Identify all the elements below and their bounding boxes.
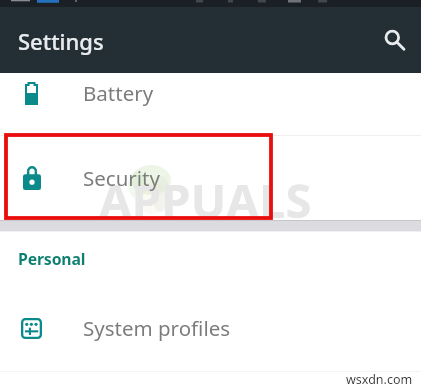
staticText: wsxdn.com (346, 371, 413, 388)
staticText: APPUALS (99, 168, 312, 232)
staticText: System profiles (83, 314, 231, 342)
staticText: Battery (83, 79, 154, 107)
staticText: Personal (18, 248, 86, 270)
button[interactable]: Battery (0, 73, 421, 135)
button[interactable]: System profiles (0, 296, 421, 360)
button[interactable]: Security (0, 136, 421, 221)
staticText: Settings (18, 26, 104, 56)
button[interactable]: Search (370, 15, 415, 60)
staticText: Security (83, 164, 160, 192)
